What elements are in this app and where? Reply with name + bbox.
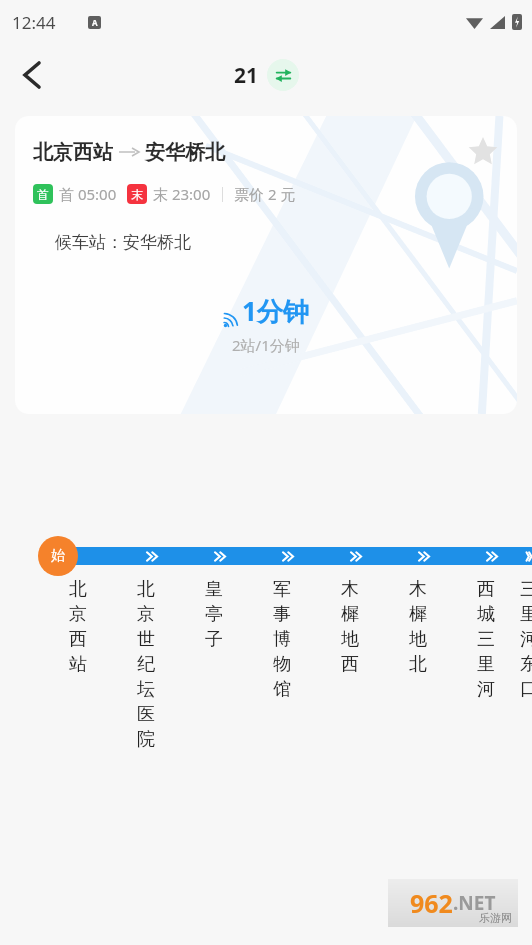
staticText: 2站/1分钟: [232, 335, 300, 355]
staticText: 北: [409, 653, 427, 676]
staticText: 亭: [205, 603, 223, 626]
button[interactable]: 木: [316, 578, 384, 678]
staticText: 事: [273, 603, 291, 626]
staticText: 木: [341, 578, 359, 601]
staticText: 首 05:00: [59, 184, 117, 204]
staticText: 世: [137, 628, 155, 651]
staticText: 末: [131, 187, 143, 202]
staticText: 皇: [205, 578, 223, 601]
staticText: 安华桥北: [145, 140, 225, 165]
staticText: 西: [69, 628, 87, 651]
staticText: 西: [341, 653, 359, 676]
button[interactable]: Reverse direction: [267, 59, 299, 91]
staticText: 京: [137, 603, 155, 626]
staticText: 候车站：安华桥北: [55, 232, 191, 253]
button[interactable]: 木: [384, 578, 452, 678]
staticText: 里: [477, 653, 495, 676]
staticText: 北: [137, 578, 155, 601]
staticText: 末 23:00: [153, 184, 211, 204]
staticText: 口: [520, 678, 532, 701]
staticText: 博: [273, 628, 291, 651]
staticText: 河: [520, 628, 532, 651]
staticText: 坛: [137, 678, 155, 701]
staticText: 物: [273, 653, 291, 676]
button[interactable]: 北: [112, 578, 180, 753]
staticText: 1分钟: [242, 293, 309, 329]
staticText: A: [92, 17, 98, 28]
staticText: 院: [137, 728, 155, 751]
button[interactable]: 军: [248, 578, 316, 703]
staticText: 城: [477, 603, 495, 626]
staticText: 票价 2 元: [234, 184, 296, 204]
staticText: 纪: [137, 653, 155, 676]
staticText: 樨: [409, 603, 427, 626]
staticText: 子: [205, 628, 223, 651]
staticText: .NET: [453, 890, 496, 916]
staticText: 军: [273, 578, 291, 601]
staticText: 首: [37, 187, 49, 202]
staticText: 乐游网: [479, 911, 512, 925]
staticText: 樨: [341, 603, 359, 626]
staticText: 北: [69, 578, 87, 601]
staticText: 地: [409, 628, 427, 651]
staticText: 962: [410, 886, 453, 920]
staticText: 站: [69, 653, 87, 676]
staticText: 东: [520, 653, 532, 676]
button[interactable]: Back: [8, 51, 56, 99]
button[interactable]: 北京西站: [15, 116, 517, 414]
staticText: 21: [234, 61, 259, 90]
staticText: 北京西站: [33, 140, 113, 165]
button[interactable]: 三: [520, 578, 532, 703]
staticText: 西: [477, 578, 495, 601]
staticText: 三: [477, 628, 495, 651]
staticText: 京: [69, 603, 87, 626]
staticText: 医: [137, 703, 155, 726]
button[interactable]: 西: [452, 578, 520, 703]
button[interactable]: 北: [44, 578, 112, 678]
staticText: 始: [51, 547, 65, 565]
staticText: 木: [409, 578, 427, 601]
staticText: 河: [477, 678, 495, 701]
button[interactable]: 皇: [180, 578, 248, 653]
staticText: 地: [341, 628, 359, 651]
staticText: 12:44: [12, 11, 56, 34]
staticText: 三: [520, 578, 532, 601]
button[interactable]: Favorite: [461, 130, 505, 174]
staticText: 馆: [273, 678, 291, 701]
staticText: 里: [520, 603, 532, 626]
